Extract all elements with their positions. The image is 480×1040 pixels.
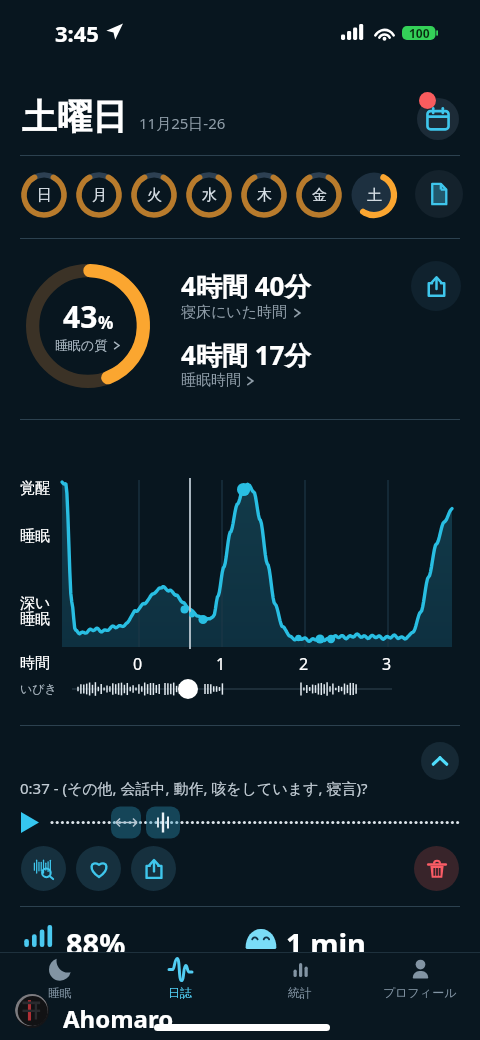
button[interactable]: Snoring time xyxy=(245,929,277,949)
button[interactable]: プロフィール xyxy=(360,952,480,1002)
staticText: 統計 xyxy=(288,985,312,1000)
button[interactable]: Collapse xyxy=(421,742,459,780)
staticText: 100 xyxy=(409,25,430,41)
staticText: 火 xyxy=(147,186,162,205)
staticText: 1 xyxy=(216,653,226,675)
staticText: 月 xyxy=(92,186,107,205)
button[interactable]: 月 xyxy=(73,169,125,221)
staticText: 88% xyxy=(66,924,126,963)
staticText: 睡眠 xyxy=(48,985,72,1000)
staticText: 1 min xyxy=(286,924,366,963)
staticText: 日 xyxy=(37,186,52,205)
staticText: 寝床にいた時間 xyxy=(181,303,288,322)
button[interactable]: Analyze audio xyxy=(21,846,66,891)
staticText: 木 xyxy=(257,186,272,205)
staticText: 11月25日-26 xyxy=(139,113,226,133)
staticText: 土 xyxy=(367,186,382,205)
button[interactable]: 睡眠 xyxy=(0,952,120,1002)
staticText: 睡眠時間 xyxy=(181,371,241,390)
staticText: 3:45 xyxy=(55,18,99,48)
staticText: % xyxy=(98,311,114,334)
button[interactable]: 日 xyxy=(18,169,70,221)
button[interactable]: 統計 xyxy=(240,952,360,1002)
button[interactable]: Calendar xyxy=(417,98,459,140)
staticText: 4時間 40分 xyxy=(181,268,311,304)
staticText: 3 xyxy=(382,653,392,675)
staticText: 日誌 xyxy=(168,985,192,1000)
staticText: 時間 xyxy=(20,654,50,673)
button[interactable]: 43 xyxy=(26,264,150,388)
staticText: 0 xyxy=(133,653,143,675)
staticText: 睡眠 xyxy=(20,527,50,546)
button[interactable]: Share xyxy=(131,846,176,891)
staticText: 0:37 - (その他, 会話中, 動作, 咳をしています, 寝言)? xyxy=(20,778,368,798)
button[interactable]: Notes xyxy=(415,170,463,218)
staticText: プロフィール xyxy=(383,985,457,1000)
staticText: いびき xyxy=(20,681,57,696)
button[interactable]: 寝床にいた時間 xyxy=(181,303,302,322)
button[interactable]: Share xyxy=(411,261,461,311)
staticText: 睡眠の質 xyxy=(55,337,108,353)
staticText: 金 xyxy=(312,186,327,205)
button[interactable]: 水 xyxy=(183,169,235,221)
button[interactable]: 火 xyxy=(128,169,180,221)
staticText: 土曜日 xyxy=(22,95,127,139)
staticText: 深い 睡眠 xyxy=(20,594,51,628)
staticText: 4時間 17分 xyxy=(181,337,311,373)
button[interactable]: 日誌 xyxy=(120,952,240,1002)
staticText: 43 xyxy=(63,296,98,337)
button[interactable]: 木 xyxy=(238,169,290,221)
button[interactable]: Favorite xyxy=(76,846,121,891)
staticText: 2 xyxy=(299,653,309,675)
button[interactable]: 金 xyxy=(293,169,345,221)
staticText: 覚醒 xyxy=(20,479,50,498)
button[interactable]: 睡眠時間 xyxy=(181,371,255,390)
staticText: Ahomaro xyxy=(63,1002,174,1035)
button[interactable]: Delete xyxy=(414,846,459,891)
button[interactable]: 土 xyxy=(348,169,400,221)
staticText: 水 xyxy=(202,186,217,205)
button[interactable]: Sleep efficiency xyxy=(23,925,54,947)
